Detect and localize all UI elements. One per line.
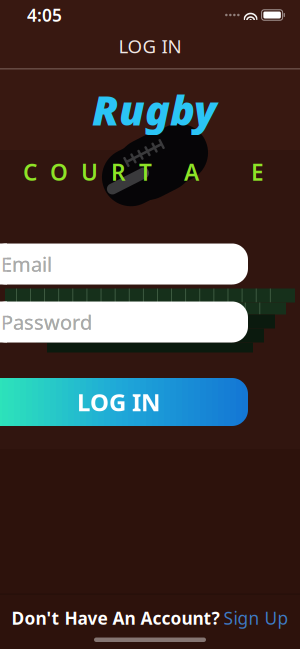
staticText: Password bbox=[1, 309, 92, 335]
staticText: Sign Up bbox=[223, 606, 288, 629]
staticText: T bbox=[139, 157, 152, 187]
button[interactable]: Email bbox=[0, 243, 248, 284]
staticText: C bbox=[23, 157, 37, 187]
staticText: Email bbox=[1, 251, 52, 277]
button[interactable]: Don't Have An Account? bbox=[0, 594, 300, 637]
staticText: Don't Have An Account? bbox=[11, 606, 219, 629]
staticText: A bbox=[184, 157, 199, 187]
button[interactable]: LOG IN bbox=[0, 378, 248, 426]
staticText: LOG IN bbox=[118, 34, 181, 58]
staticText: Password bbox=[1, 309, 92, 335]
staticText: Email bbox=[1, 251, 52, 277]
staticText: 4:05 bbox=[27, 3, 62, 26]
button[interactable]: Password bbox=[0, 301, 248, 342]
staticText: U bbox=[81, 157, 98, 187]
staticText: E bbox=[251, 157, 264, 187]
staticText: O bbox=[50, 157, 68, 187]
staticText: LOG IN bbox=[77, 386, 161, 418]
staticText: R bbox=[111, 157, 126, 187]
staticText: Rugby bbox=[92, 82, 216, 137]
